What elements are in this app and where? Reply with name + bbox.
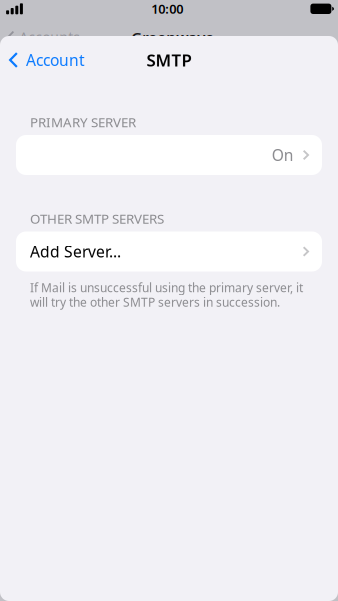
staticText: If Mail is unsuccessful using the primar…	[30, 279, 303, 310]
staticText: SMTP	[146, 49, 191, 71]
staticText: 10:00	[151, 0, 183, 17]
staticText: Accounts	[270, 28, 331, 47]
staticText: Add Server...	[30, 241, 121, 262]
staticText: OTHER SMTP SERVERS	[30, 210, 164, 227]
staticText: Account	[26, 49, 85, 71]
staticText: PRIMARY SERVER	[30, 113, 136, 131]
button[interactable]: On	[16, 135, 322, 175]
button[interactable]: Account	[0, 44, 97, 76]
staticText: Accounts	[19, 28, 80, 47]
button[interactable]: Add Server...	[16, 231, 322, 271]
staticText: On	[272, 144, 294, 166]
staticText: Greenwave	[131, 27, 214, 47]
